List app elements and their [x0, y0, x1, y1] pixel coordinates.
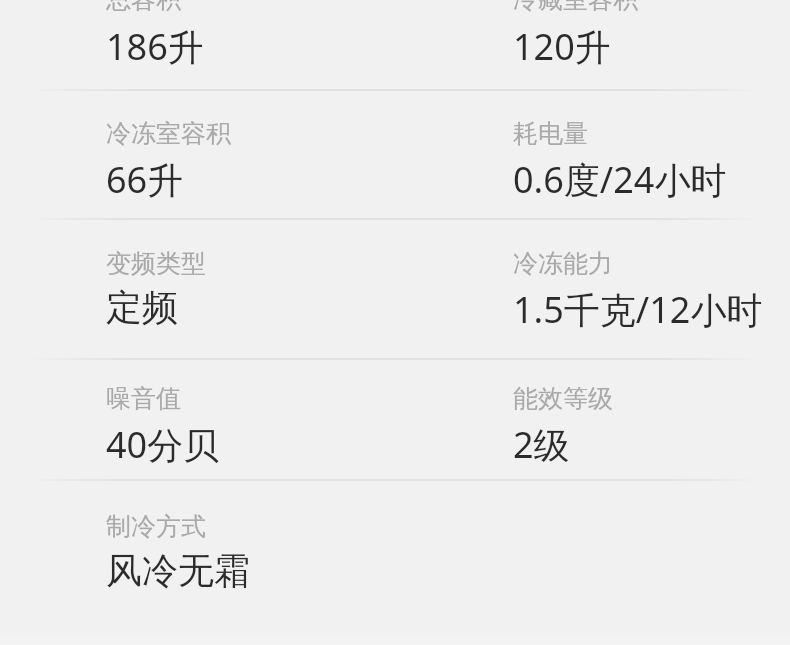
- staticText: 变频类型: [106, 248, 206, 279]
- button[interactable]: 耗电量: [513, 118, 790, 199]
- staticText: 耗电量: [513, 118, 588, 149]
- button[interactable]: 变频类型: [106, 248, 411, 329]
- staticText: 能效等级: [513, 383, 613, 414]
- staticText: 120升: [513, 22, 611, 71]
- button[interactable]: 冷冻能力: [513, 248, 790, 329]
- staticText: 冷冻室容积: [106, 118, 231, 149]
- staticText: 风冷无霜: [106, 548, 250, 593]
- button[interactable]: 冷冻室容积: [106, 118, 411, 199]
- staticText: 66升: [106, 155, 184, 204]
- staticText: 总容积: [106, 0, 181, 15]
- staticText: 2级: [513, 420, 570, 469]
- staticText: 噪音值: [106, 383, 181, 414]
- button[interactable]: 噪音值: [106, 383, 411, 464]
- staticText: 186升: [106, 22, 204, 71]
- button[interactable]: 冷藏室容积: [513, 0, 790, 66]
- button[interactable]: 总容积: [106, 0, 411, 66]
- staticText: 定频: [106, 285, 178, 330]
- staticText: 1.5千克/12小时: [513, 285, 763, 334]
- staticText: 制冷方式: [106, 511, 206, 542]
- button[interactable]: 能效等级: [513, 383, 790, 464]
- button[interactable]: 制冷方式: [106, 511, 411, 592]
- staticText: 冷藏室容积: [513, 0, 638, 15]
- staticText: 0.6度/24小时: [513, 155, 727, 204]
- staticText: 冷冻能力: [513, 248, 613, 279]
- staticText: 40分贝: [106, 420, 220, 469]
